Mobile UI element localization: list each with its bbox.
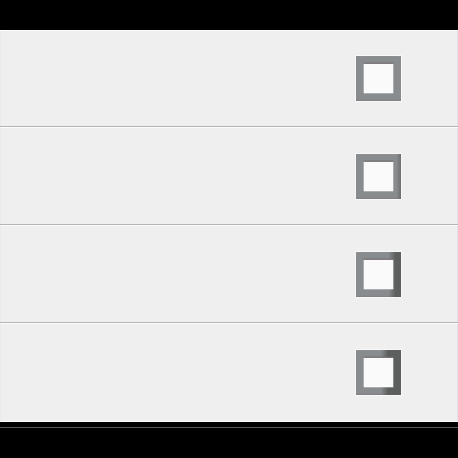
button[interactable]: List item 1 bbox=[0, 31, 458, 126]
other: Checkbox, unchecked bbox=[355, 349, 402, 396]
button[interactable]: List item 3 bbox=[0, 226, 458, 322]
other: Checkbox, unchecked bbox=[355, 251, 402, 298]
button[interactable]: List item 2 bbox=[0, 128, 458, 224]
button[interactable]: List item 4 bbox=[0, 324, 458, 421]
other: Checkbox, unchecked bbox=[355, 55, 402, 102]
other: Checkbox, unchecked bbox=[355, 153, 402, 200]
